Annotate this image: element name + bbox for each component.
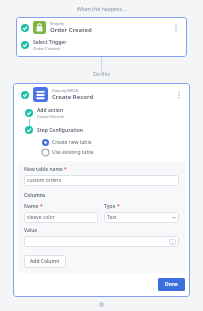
staticText: Use existing table bbox=[52, 149, 94, 156]
button[interactable]: Use existing table bbox=[18, 149, 185, 156]
button[interactable]: Step Configuration bbox=[18, 126, 185, 134]
button[interactable]: sleeve color bbox=[24, 212, 98, 223]
button[interactable]: custom orders bbox=[24, 175, 179, 186]
button[interactable]: ‹ bbox=[18, 87, 185, 102]
button[interactable]: More options bbox=[173, 89, 185, 101]
staticText: * bbox=[40, 203, 43, 210]
button[interactable]: Text bbox=[104, 212, 179, 223]
button[interactable]: ‹ bbox=[13, 83, 190, 297]
staticText: Add action bbox=[37, 107, 64, 114]
button[interactable]: Shopify bbox=[21, 21, 182, 34]
button[interactable]: Create new table bbox=[18, 139, 185, 146]
button[interactable]: Insert variable bbox=[169, 239, 176, 245]
staticText: New table name bbox=[24, 166, 63, 173]
staticText: Name bbox=[24, 203, 39, 210]
button[interactable]: Add action bbox=[18, 107, 185, 119]
staticText: Create Record bbox=[37, 114, 64, 119]
staticText: Value bbox=[24, 227, 38, 234]
staticText: Create new table bbox=[52, 139, 92, 146]
staticText: Create Record bbox=[52, 93, 94, 101]
staticText: sleeve color bbox=[27, 214, 95, 221]
button[interactable]: Insert variable bbox=[24, 236, 179, 247]
staticText: custom orders bbox=[27, 177, 176, 184]
staticText: Add Column bbox=[30, 258, 60, 265]
staticText: Do this bbox=[0, 71, 203, 78]
staticText: Done bbox=[165, 281, 178, 288]
staticText: Data by MESA bbox=[52, 88, 78, 93]
button[interactable]: Done bbox=[158, 278, 185, 291]
staticText: + bbox=[171, 240, 174, 245]
staticText: Columns bbox=[24, 192, 46, 199]
staticText: Select Trigger bbox=[33, 39, 67, 46]
button[interactable]: More options bbox=[170, 22, 182, 34]
staticText: When this happens... bbox=[0, 6, 203, 13]
staticText: * bbox=[117, 203, 120, 210]
button[interactable]: Add Column bbox=[24, 255, 66, 268]
staticText: * bbox=[64, 166, 67, 173]
staticText: Step Configuration bbox=[37, 127, 83, 134]
staticText: Type bbox=[104, 203, 116, 210]
button[interactable]: Select Trigger bbox=[21, 39, 182, 51]
staticText: Order Created bbox=[50, 26, 92, 34]
staticText: Order Created bbox=[33, 46, 60, 51]
staticText: Shopify bbox=[50, 21, 64, 26]
staticText: ‹ bbox=[18, 91, 20, 98]
button[interactable]: Shopify bbox=[16, 17, 187, 57]
staticText: Text bbox=[107, 214, 172, 221]
